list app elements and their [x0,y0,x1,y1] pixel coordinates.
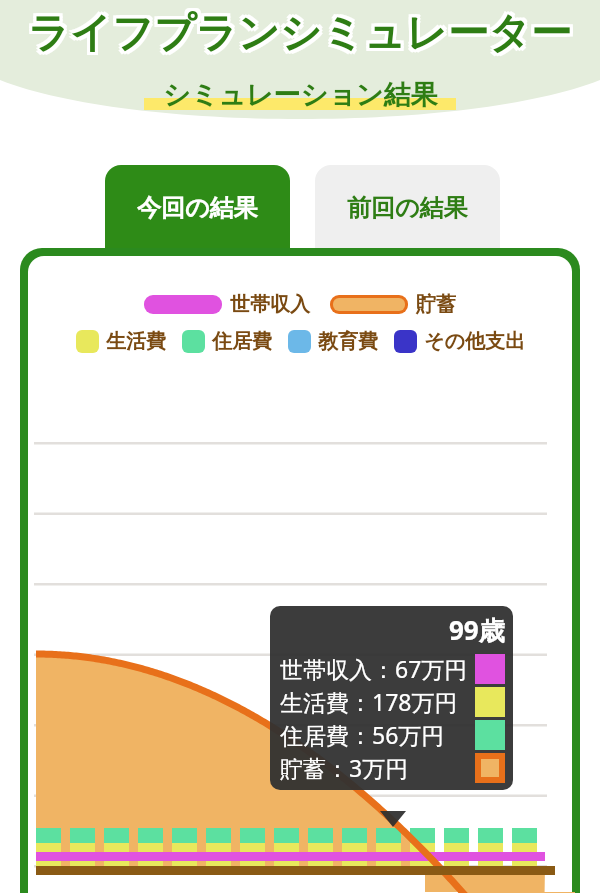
staticText: ライフプランシミュレーター [25,5,569,57]
staticText: ライフプランシミュレーター [31,11,575,63]
staticText: 世帯収入 [230,292,310,317]
staticText: ライフプランシミュレーター [28,11,572,63]
staticText: ライフプランシミュレーター [28,5,572,57]
staticText: 貯蓄：3万円 [280,752,475,783]
staticText: 教育費 [318,329,378,354]
staticText: ライフプランシミュレーター [31,5,575,57]
button[interactable]: 前回の結果 [315,165,500,250]
staticText: ライフプランシミュレーター [25,11,569,63]
staticText: 99歳 [449,612,505,648]
staticText: 住居費 [212,329,272,354]
staticText: 住居費：56万円 [280,719,475,750]
staticText: 今回の結果 [137,193,258,223]
staticText: ライフプランシミュレーター [28,8,572,60]
staticText: その他支出 [424,329,525,354]
staticText: ライフプランシミュレーター [25,8,569,60]
staticText: 貯蓄 [416,292,456,317]
staticText: 生活費 [106,329,166,354]
button[interactable]: 今回の結果 [105,165,290,250]
staticText: シミュレーション結果 [163,78,438,112]
staticText: 前回の結果 [347,193,468,223]
staticText: 生活費：178万円 [280,686,475,717]
staticText: ライフプランシミュレーター [31,8,575,60]
staticText: 世帯収入：67万円 [280,653,475,684]
